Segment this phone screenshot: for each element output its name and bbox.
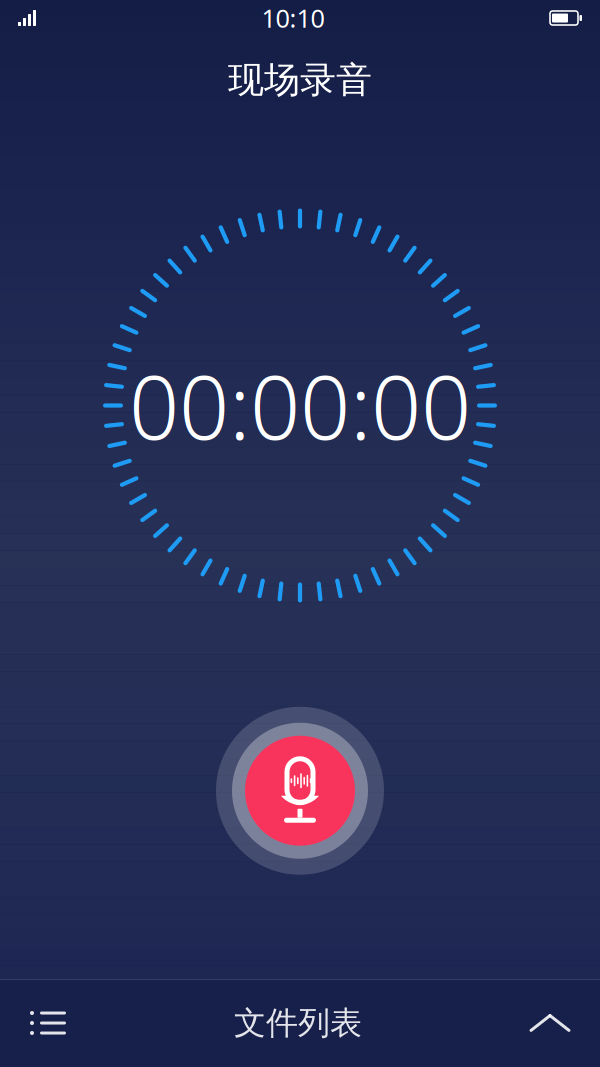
button[interactable]: 文件列表 (222, 985, 374, 1061)
staticText: 文件列表 (234, 1003, 362, 1043)
staticText: 10:10 (261, 1, 324, 35)
staticText: 00:00:00 (129, 347, 471, 464)
button[interactable]: Expand (514, 990, 586, 1056)
button[interactable]: Record (212, 703, 388, 879)
button[interactable]: File list (14, 990, 82, 1056)
staticText: 现场录音 (228, 58, 372, 102)
